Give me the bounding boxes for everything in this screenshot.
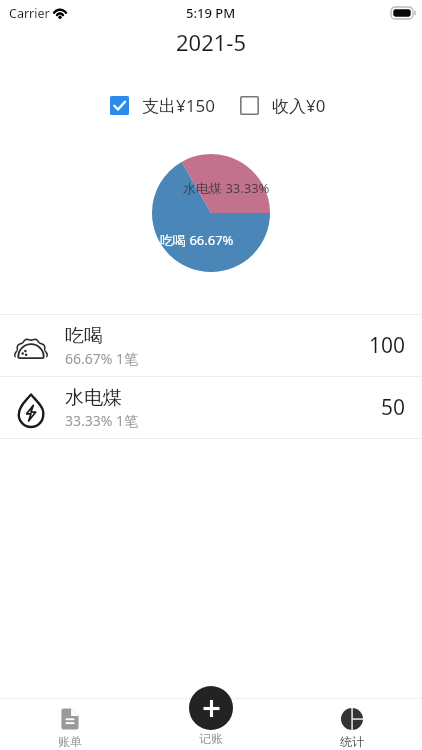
staticText: 5:19 PM xyxy=(186,4,236,22)
staticText: 收入¥0 xyxy=(272,94,326,117)
button[interactable]: 账单 xyxy=(0,698,140,750)
staticText: 2021-5 xyxy=(176,27,247,57)
staticText: 66.67% 1笔 xyxy=(65,349,139,368)
button[interactable]: 水电煤 xyxy=(0,377,422,438)
button[interactable]: 记账 xyxy=(189,686,233,730)
staticText: 支出¥150 xyxy=(142,94,215,117)
staticText: 吃喝 xyxy=(65,324,103,348)
button[interactable]: 统计 xyxy=(281,698,422,750)
button[interactable]: 支出¥150 xyxy=(110,94,215,117)
button[interactable]: 吃喝 xyxy=(0,315,422,376)
button[interactable]: 收入¥0 xyxy=(240,94,326,117)
staticText: 100 xyxy=(369,331,406,360)
staticText: 吃喝 66.67% xyxy=(160,231,234,249)
staticText: Carrier xyxy=(9,5,50,22)
staticText: 50 xyxy=(381,393,406,422)
staticText: 水电煤 xyxy=(65,386,122,410)
staticText: 账单 xyxy=(58,734,82,749)
staticText: 水电煤 33.33% xyxy=(183,179,270,197)
staticText: 记账 xyxy=(199,731,223,746)
staticText: 33.33% 1笔 xyxy=(65,411,139,430)
staticText: 统计 xyxy=(340,734,364,749)
